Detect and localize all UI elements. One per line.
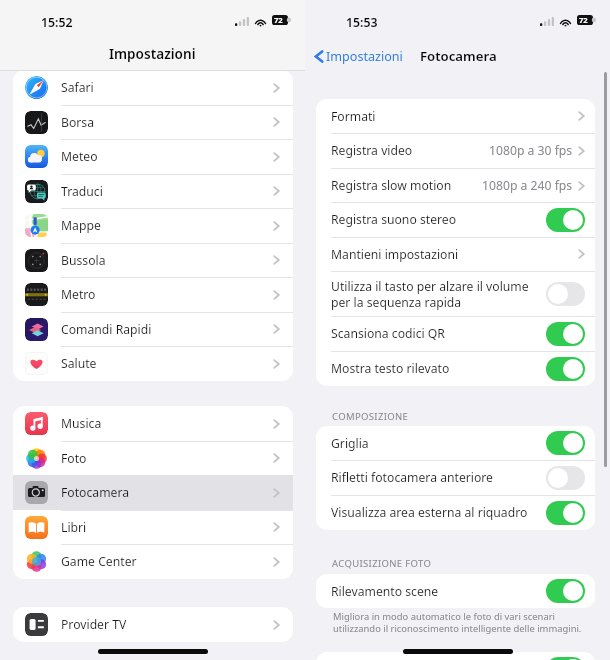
- button[interactable]: Musica: [13, 406, 293, 441]
- staticText: ACQUISIZIONE FOTO: [332, 557, 432, 570]
- button[interactable]: Libri: [13, 510, 293, 544]
- staticText: COMPOSIZIONE: [332, 410, 409, 423]
- staticText: Metro: [61, 286, 96, 303]
- staticText: Griglia: [331, 435, 369, 452]
- staticText: Libri: [61, 519, 87, 536]
- button[interactable]: Safari: [13, 70, 293, 105]
- staticText: Scansiona codici QR: [331, 325, 445, 342]
- staticText: Traduci: [61, 183, 103, 200]
- staticText: Mappe: [61, 217, 101, 234]
- staticText: Foto: [61, 450, 87, 467]
- staticText: Safari: [61, 79, 94, 96]
- staticText: 72: [579, 15, 588, 25]
- button[interactable]: Registra suono stereo: [316, 202, 595, 237]
- button[interactable]: Traduci: [13, 174, 293, 208]
- button[interactable]: Utilizza il tasto per alzare il volume p…: [316, 271, 595, 316]
- staticText: Provider TV: [61, 616, 127, 633]
- staticText: Mostra testo rilevato: [331, 360, 450, 377]
- staticText: 1080p a 30 fps: [489, 142, 573, 159]
- button[interactable]: Mappe: [13, 208, 293, 243]
- button[interactable]: Attivato: [546, 357, 585, 381]
- button[interactable]: Registra video: [316, 133, 595, 168]
- button[interactable]: Fotocamera: [13, 475, 293, 510]
- staticText: 1080p a 240 fps: [482, 177, 573, 194]
- button[interactable]: Disattivato: [546, 466, 585, 490]
- button[interactable]: Attivato: [546, 208, 585, 232]
- staticText: Formati: [331, 108, 376, 125]
- staticText: Utilizza il tasto per alzare il volume p…: [331, 278, 529, 310]
- button[interactable]: Game Center: [13, 544, 293, 579]
- staticText: Rilevamento scene: [331, 583, 439, 600]
- staticText: Migliora in modo automatico le foto di v…: [333, 610, 582, 635]
- button[interactable]: Registra slow motion: [316, 168, 595, 202]
- staticText: Musica: [61, 415, 102, 432]
- button[interactable]: Foto: [13, 441, 293, 475]
- staticText: 15:53: [346, 14, 378, 31]
- staticText: Game Center: [61, 553, 137, 570]
- button[interactable]: Attivato: [546, 322, 585, 346]
- staticText: Registra slow motion: [331, 177, 452, 194]
- button[interactable]: Rilevamento scene: [316, 574, 595, 608]
- staticText: Bussola: [61, 252, 106, 269]
- button[interactable]: Mantieni impostazioni: [316, 237, 595, 271]
- button[interactable]: Bussola: [13, 243, 293, 277]
- staticText: 72: [274, 15, 283, 25]
- staticText: Registra video: [331, 142, 413, 159]
- button[interactable]: Attivato: [546, 657, 585, 660]
- button[interactable]: Borsa: [13, 105, 293, 139]
- button[interactable]: Attivato: [546, 431, 585, 455]
- staticText: Fotocamera: [420, 47, 497, 65]
- staticText: Comandi Rapidi: [61, 321, 152, 338]
- button[interactable]: Metro: [13, 277, 293, 312]
- staticText: Registra suono stereo: [331, 211, 457, 228]
- staticText: Meteo: [61, 148, 98, 165]
- button[interactable]: Meteo: [13, 139, 293, 174]
- button[interactable]: Scansiona codici QR: [316, 316, 595, 351]
- staticText: Borsa: [61, 114, 95, 131]
- button[interactable]: Rifletti fotocamera anteriore: [316, 460, 595, 495]
- staticText: Impostazioni: [109, 44, 196, 63]
- staticText: Salute: [61, 355, 97, 372]
- staticText: Impostazioni: [326, 48, 403, 65]
- button[interactable]: Mostra testo rilevato: [316, 351, 595, 386]
- button[interactable]: Griglia: [316, 426, 595, 460]
- staticText: Mantieni impostazioni: [331, 246, 459, 263]
- button[interactable]: Disattivato: [546, 282, 585, 306]
- staticText: 15:52: [41, 14, 73, 31]
- button[interactable]: Visualizza area esterna al riquadro: [316, 495, 595, 530]
- staticText: Rifletti fotocamera anteriore: [331, 469, 493, 486]
- button[interactable]: Formati: [316, 99, 595, 133]
- button[interactable]: Provider TV: [13, 607, 293, 642]
- button[interactable]: Comandi Rapidi: [13, 312, 293, 346]
- button[interactable]: Salute: [13, 346, 293, 381]
- staticText: Fotocamera: [61, 484, 130, 501]
- button[interactable]: Attivato: [546, 579, 585, 603]
- button[interactable]: Attivato: [316, 652, 595, 660]
- button[interactable]: Indietro: Impostazioni: [314, 48, 407, 65]
- button[interactable]: Attivato: [546, 501, 585, 525]
- staticText: Visualizza area esterna al riquadro: [331, 504, 528, 521]
